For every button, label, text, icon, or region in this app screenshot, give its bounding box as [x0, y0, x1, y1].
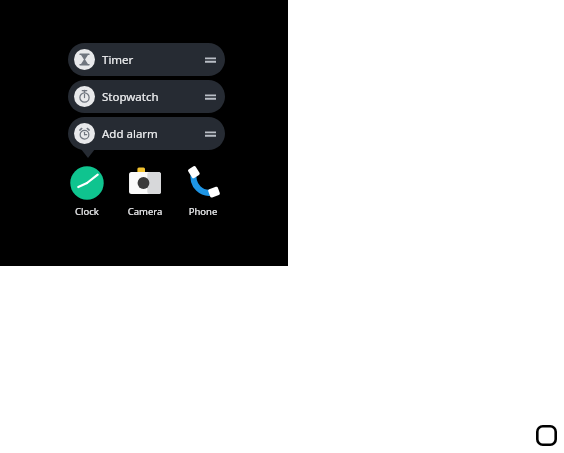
- button[interactable]: Recents: [536, 425, 557, 446]
- staticText: Add alarm: [102, 126, 158, 142]
- button[interactable]: Timer: [68, 43, 225, 76]
- staticText: Camera: [124, 205, 166, 218]
- button[interactable]: Add alarm: [68, 117, 225, 150]
- button[interactable]: Stopwatch: [68, 80, 225, 113]
- button[interactable]: Camera: [124, 164, 166, 218]
- staticText: Stopwatch: [102, 89, 159, 105]
- button[interactable]: Clock: [66, 164, 108, 218]
- staticText: Phone: [182, 205, 224, 218]
- staticText: Timer: [102, 52, 134, 68]
- staticText: Clock: [66, 205, 108, 218]
- button[interactable]: Phone: [182, 164, 224, 218]
